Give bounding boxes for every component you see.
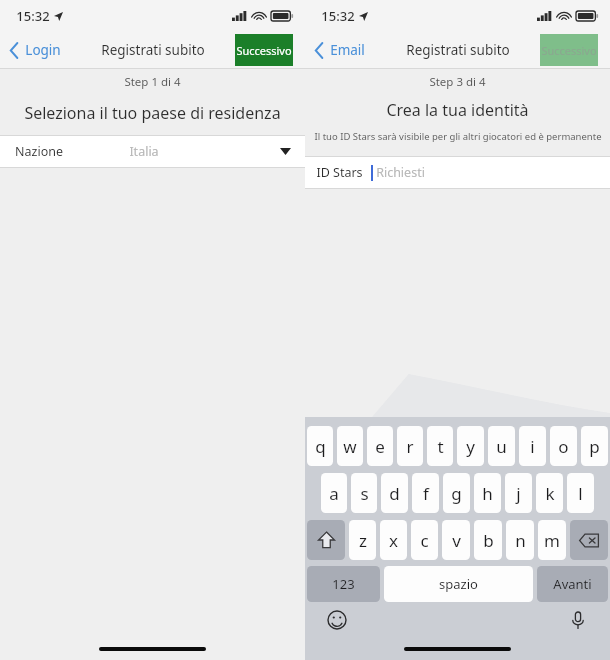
button[interactable]: b	[474, 520, 502, 560]
staticText: r	[406, 435, 414, 458]
staticText: Successivo	[236, 43, 292, 58]
button[interactable]: Email	[315, 41, 365, 59]
button[interactable]: h	[474, 473, 501, 513]
staticText: q	[315, 435, 326, 458]
staticText: Email	[330, 41, 365, 59]
staticText: Avanti	[553, 575, 592, 593]
staticText: z	[359, 529, 367, 552]
staticText: Italia	[129, 143, 159, 160]
button[interactable]: u	[488, 426, 515, 466]
staticText: Registrati subito	[406, 41, 510, 59]
staticText: g	[451, 482, 462, 505]
button[interactable]: f	[412, 473, 439, 513]
button[interactable]: g	[443, 473, 470, 513]
staticText: y	[466, 435, 475, 458]
button[interactable]: m	[538, 520, 566, 560]
staticText: o	[558, 435, 569, 458]
staticText: t	[437, 435, 444, 458]
staticText: i	[530, 435, 535, 458]
staticText: Step 3 di 4	[429, 74, 486, 90]
button[interactable]: n	[506, 520, 534, 560]
staticText: s	[360, 482, 369, 505]
staticText: Richiesti	[376, 164, 425, 181]
staticText: d	[389, 482, 400, 505]
staticText: u	[496, 435, 507, 458]
staticText: p	[589, 435, 600, 458]
staticText: Registrati subito	[101, 41, 205, 59]
button[interactable]: t	[427, 426, 453, 466]
staticText: j	[516, 482, 521, 505]
staticText: 123	[332, 575, 355, 593]
staticText: Il tuo ID Stars sarà visibile per gli al…	[314, 130, 602, 143]
button[interactable]: ID Stars	[305, 157, 610, 188]
button[interactable]: s	[351, 473, 377, 513]
button[interactable]: Nazione	[0, 136, 305, 167]
staticText: Crea la tua identità	[386, 99, 529, 121]
staticText: c	[420, 529, 429, 552]
button[interactable]: Backspace	[570, 520, 608, 560]
staticText: 15:32	[16, 7, 50, 25]
button[interactable]: k	[536, 473, 563, 513]
button[interactable]: i	[519, 426, 546, 466]
staticText: Nazione	[15, 143, 63, 160]
staticText: b	[483, 529, 494, 552]
button[interactable]: z	[349, 520, 376, 560]
button[interactable]: Successivo	[540, 34, 598, 66]
button[interactable]: d	[381, 473, 408, 513]
button[interactable]: p	[581, 426, 608, 466]
staticText: Step 1 di 4	[124, 74, 181, 90]
button[interactable]: q	[307, 426, 333, 466]
button[interactable]: x	[380, 520, 407, 560]
button[interactable]: o	[550, 426, 577, 466]
staticText: Seleziona il tuo paese di residenza	[24, 102, 281, 124]
button[interactable]: 123	[307, 566, 380, 602]
staticText: a	[329, 482, 339, 505]
button[interactable]: v	[442, 520, 470, 560]
button[interactable]: Avanti	[537, 566, 608, 602]
button[interactable]: e	[367, 426, 393, 466]
staticText: ID Stars	[316, 164, 363, 181]
staticText: k	[545, 482, 555, 505]
button[interactable]: j	[505, 473, 532, 513]
button[interactable]: spazio	[384, 566, 533, 602]
staticText: v	[452, 529, 461, 552]
staticText: h	[482, 482, 493, 505]
staticText: x	[389, 529, 398, 552]
staticText: spazio	[439, 575, 478, 593]
button[interactable]: c	[411, 520, 438, 560]
staticText: w	[343, 435, 357, 458]
staticText: 15:32	[321, 7, 355, 25]
button[interactable]: r	[397, 426, 423, 466]
button[interactable]: a	[321, 473, 347, 513]
button[interactable]: Dictation	[568, 610, 588, 630]
button[interactable]: Shift	[307, 520, 345, 560]
staticText: Login	[25, 41, 61, 59]
staticText: e	[375, 435, 385, 458]
button[interactable]: y	[457, 426, 484, 466]
staticText: n	[515, 529, 526, 552]
button[interactable]: Login	[10, 41, 61, 59]
staticText: l	[578, 482, 583, 505]
button[interactable]: l	[567, 473, 594, 513]
button[interactable]: w	[337, 426, 363, 466]
staticText: m	[544, 529, 560, 552]
staticText: Successivo	[541, 43, 597, 58]
staticText: f	[423, 482, 429, 505]
button[interactable]: Emoji	[327, 610, 347, 630]
button[interactable]: Successivo	[235, 34, 293, 66]
